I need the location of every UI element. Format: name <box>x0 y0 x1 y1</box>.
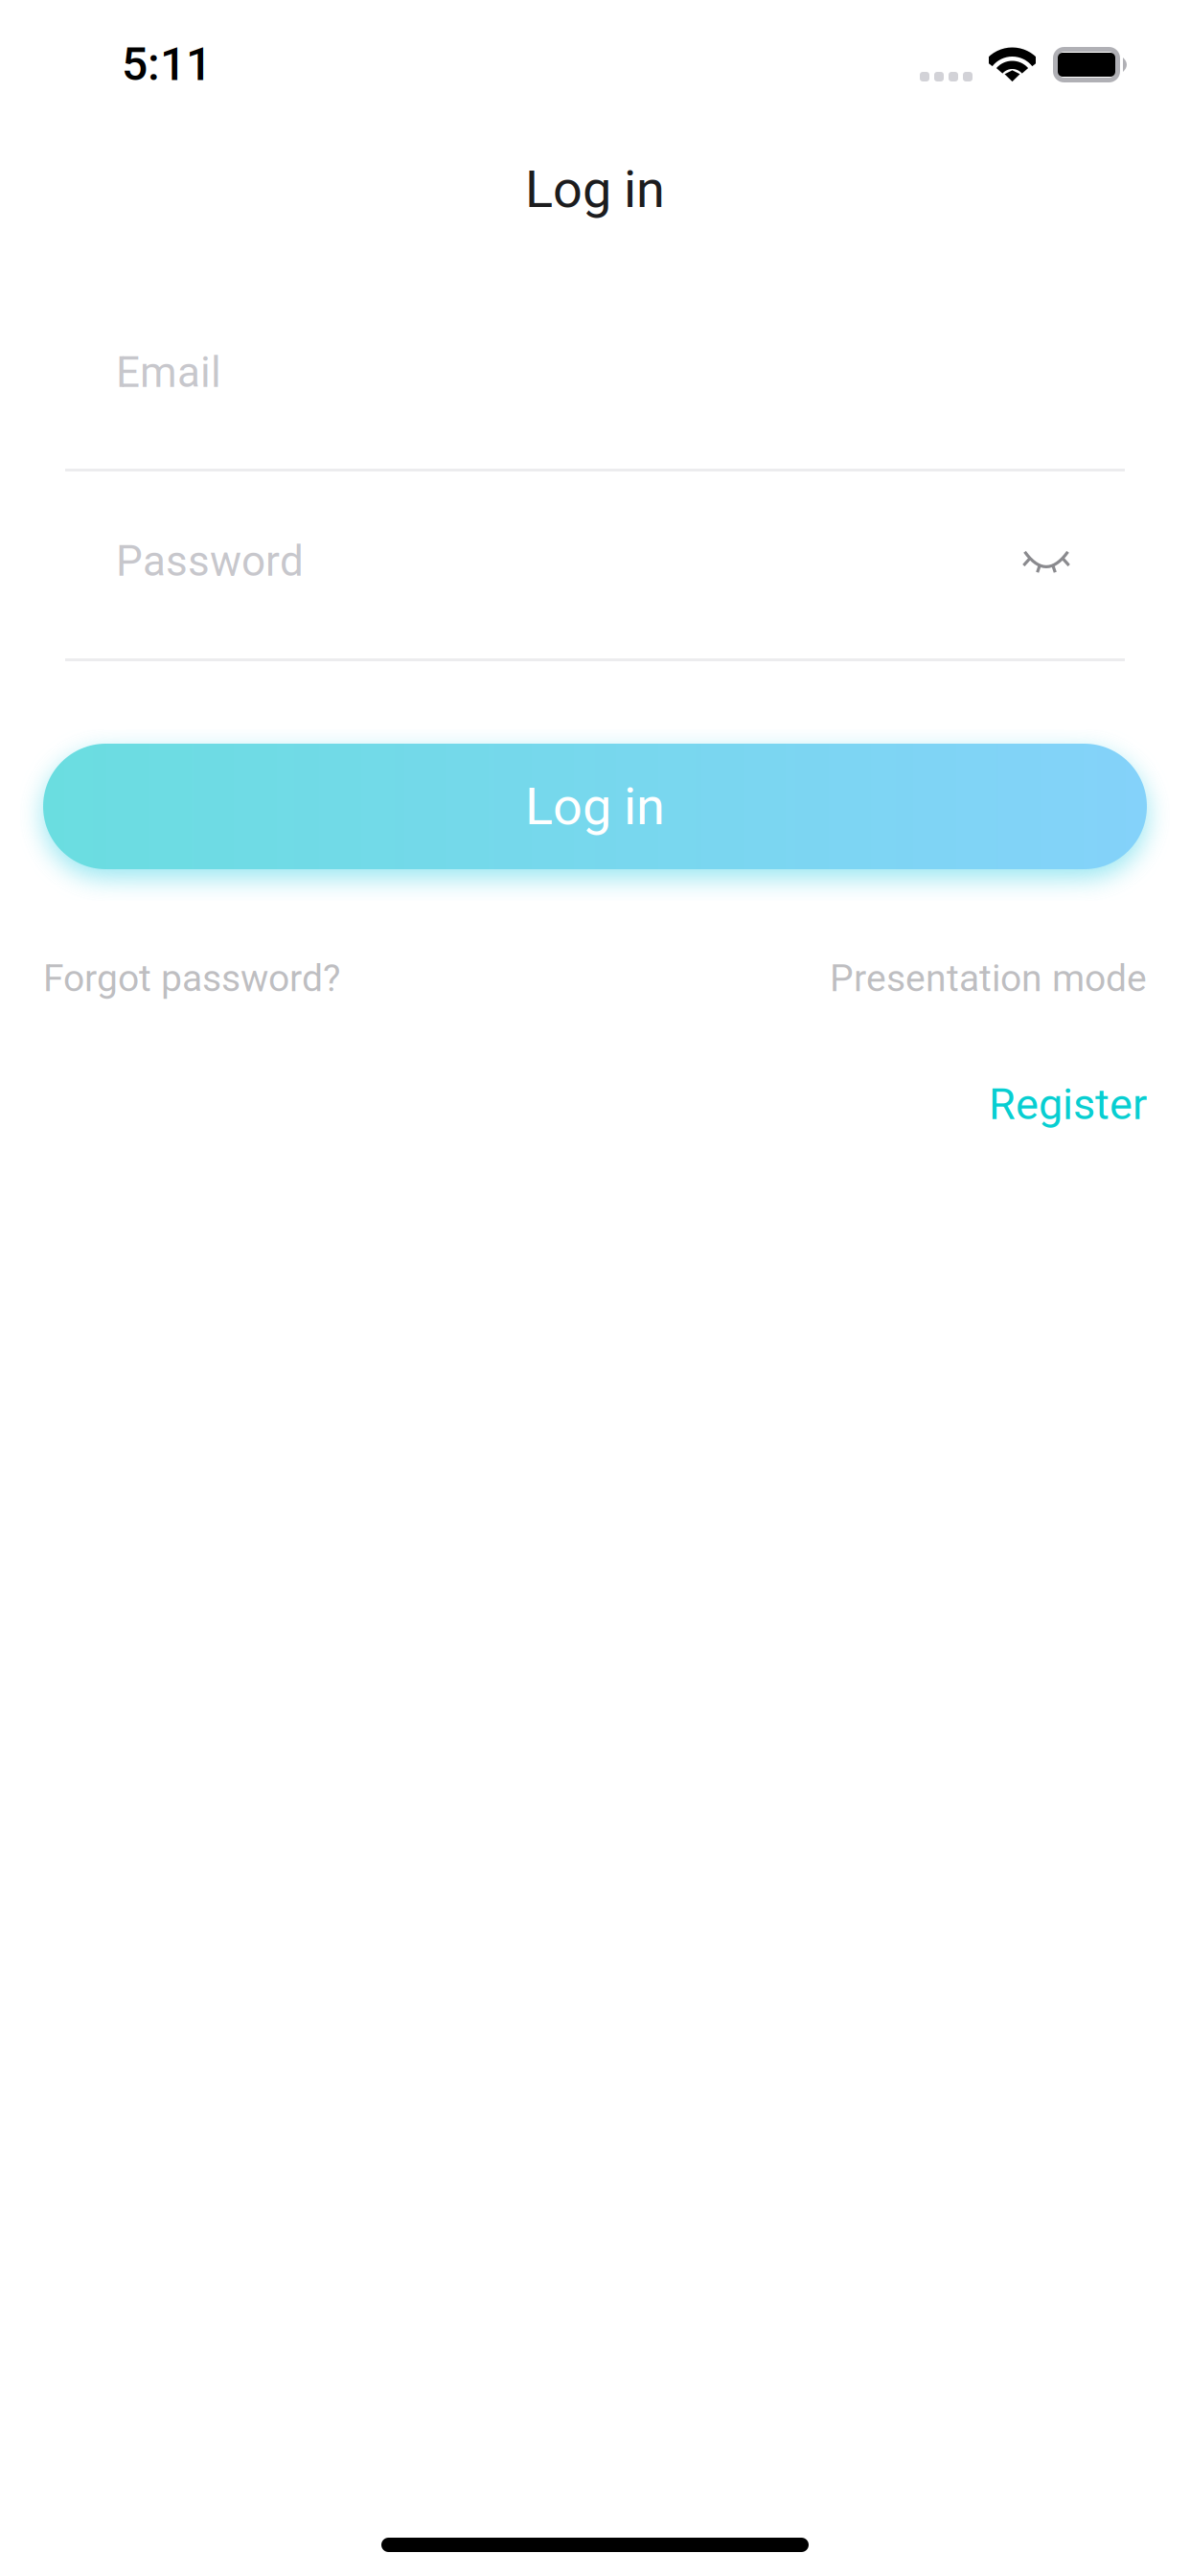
staticText: Email <box>116 348 221 397</box>
button[interactable]: Forgot password? <box>43 956 340 1000</box>
button[interactable]: Password <box>65 523 1125 660</box>
staticText: Forgot password? <box>43 956 340 1000</box>
staticText: 5:11 <box>122 37 212 91</box>
button[interactable]: Log in <box>43 744 1147 869</box>
button[interactable]: Email <box>65 334 1125 471</box>
button[interactable]: Show password <box>994 512 1099 611</box>
staticText: Presentation mode <box>830 956 1147 1000</box>
staticText: Password <box>116 537 304 586</box>
staticText: Register <box>989 1079 1147 1130</box>
staticText: Log in <box>525 776 665 837</box>
button[interactable]: Register <box>989 1079 1147 1130</box>
staticText: Log in <box>525 159 665 220</box>
button[interactable]: Presentation mode <box>830 956 1147 1000</box>
